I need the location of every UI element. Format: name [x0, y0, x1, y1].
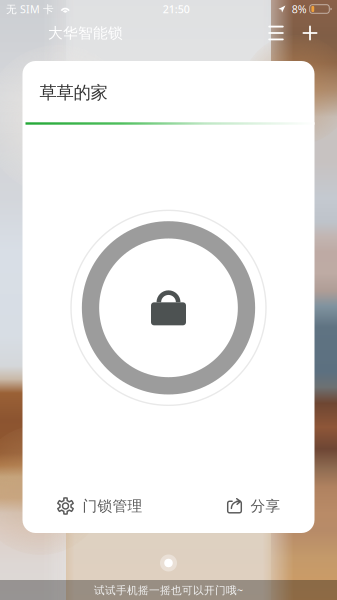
staticText: 无 SIM 卡	[6, 2, 54, 16]
button[interactable]: 分享	[226, 491, 280, 521]
staticText: 21:50	[163, 2, 190, 16]
staticText: 8%	[292, 2, 307, 16]
button[interactable]: Add device	[293, 18, 327, 48]
staticText: 大华智能锁	[48, 24, 123, 42]
button[interactable]: 门锁管理	[56, 491, 142, 521]
staticText: 试试手机摇一摇也可以开门哦~	[94, 583, 243, 597]
staticText: 分享	[250, 497, 280, 515]
staticText: 草草的家	[39, 82, 107, 103]
staticText: 门锁管理	[82, 497, 142, 515]
button[interactable]: Menu	[259, 18, 293, 48]
button[interactable]: Unlock	[68, 208, 268, 408]
